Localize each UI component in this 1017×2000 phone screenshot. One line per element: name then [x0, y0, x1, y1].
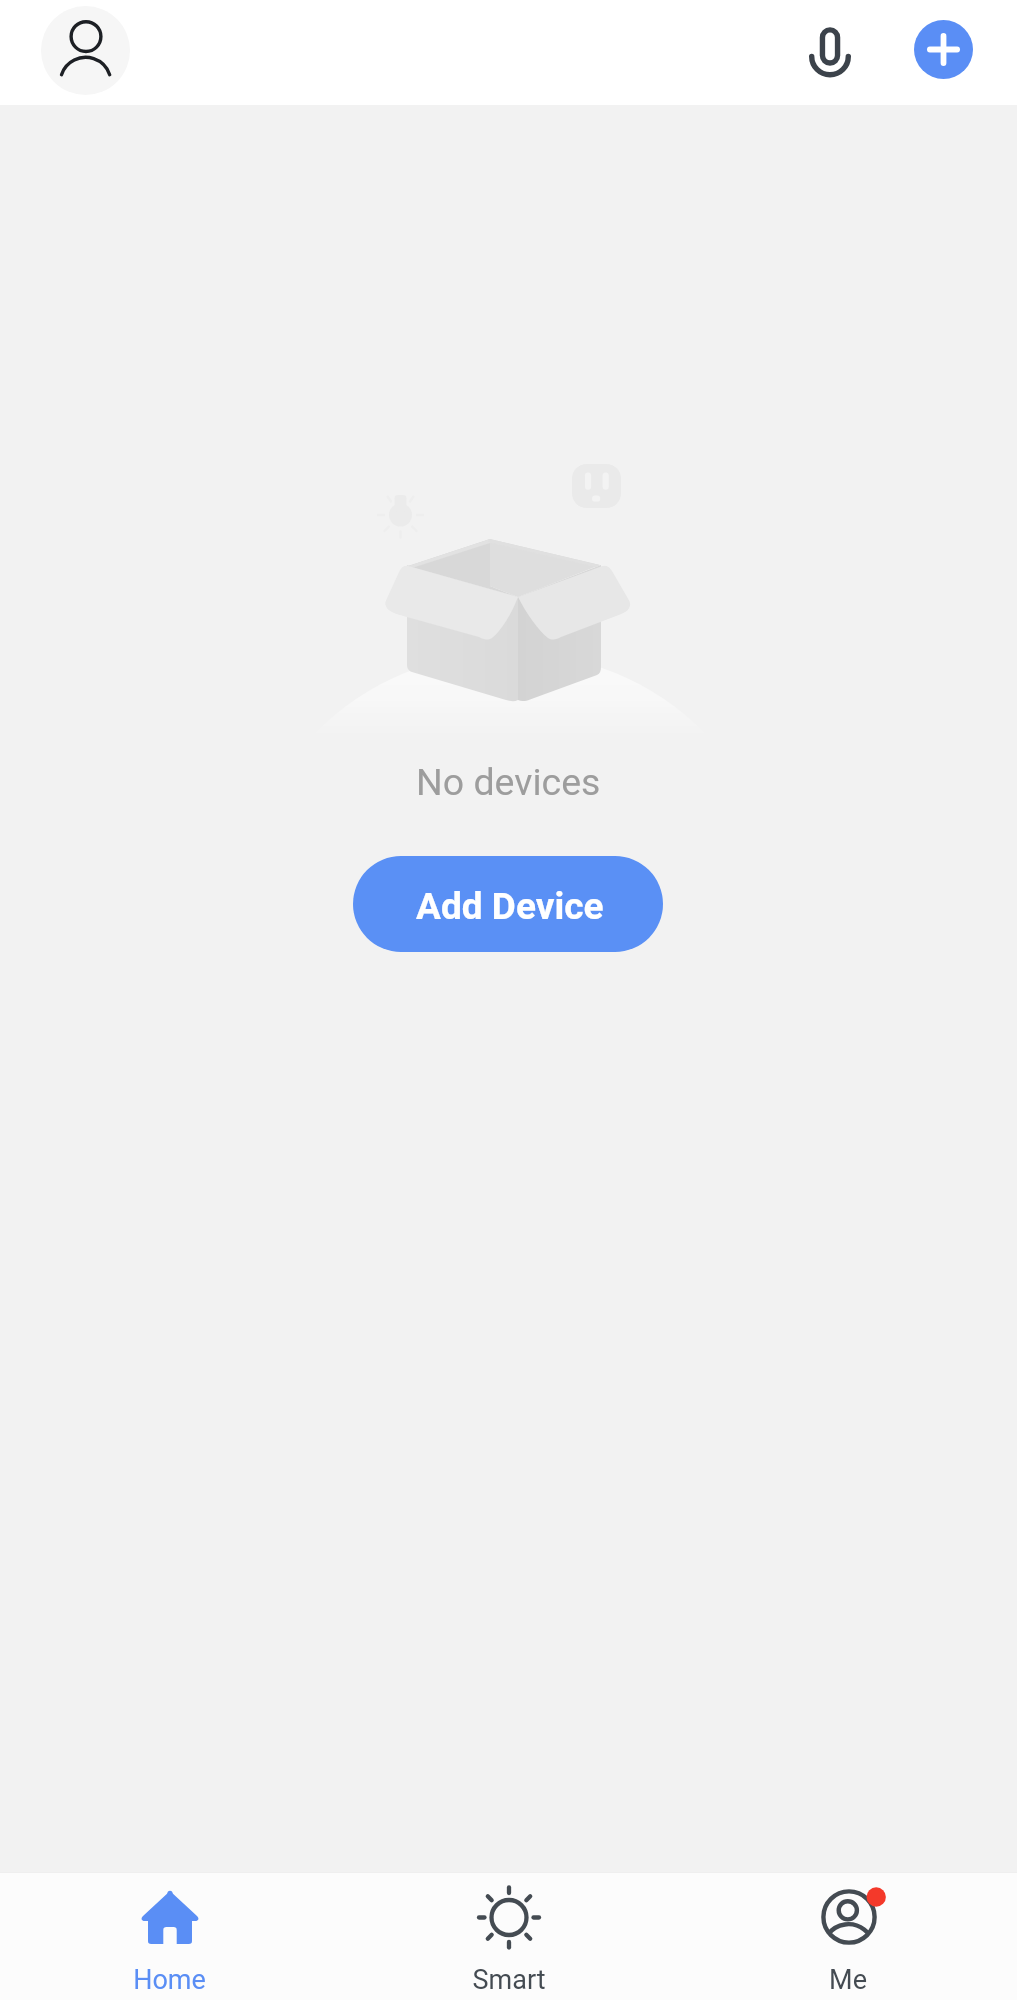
button[interactable]: Voice assistant — [790, 11, 870, 91]
staticText: Home — [133, 1964, 206, 1996]
staticText: Smart — [472, 1964, 546, 1996]
staticText: Add Device — [416, 885, 604, 928]
button[interactable]: Add device — [914, 20, 973, 79]
staticText: No devices — [416, 760, 601, 804]
button[interactable]: Me — [678, 1873, 1017, 2000]
button[interactable]: Profile — [41, 6, 130, 95]
button[interactable]: Smart — [339, 1873, 678, 2000]
staticText: Me — [829, 1964, 867, 1996]
button[interactable]: Add Device — [353, 856, 663, 952]
button[interactable]: Home — [0, 1873, 339, 2000]
